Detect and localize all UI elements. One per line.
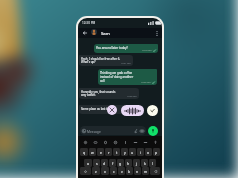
button[interactable]: z — [92, 167, 100, 175]
button[interactable]: More options — [152, 28, 161, 38]
button[interactable]: d — [101, 159, 108, 167]
button[interactable]: You around later today? — [94, 44, 158, 53]
button[interactable]: t — [113, 148, 120, 156]
button[interactable]: Clipboard — [102, 139, 108, 145]
staticText: b — [128, 169, 131, 174]
button[interactable]: b — [126, 167, 133, 175]
staticText: j — [136, 161, 137, 166]
staticText: 12:18 pm — [142, 49, 152, 52]
staticText: n — [136, 169, 139, 174]
staticText: Same place as last time? — [81, 107, 114, 111]
button[interactable]: Emoji — [122, 139, 128, 145]
staticText: u — [131, 150, 134, 155]
staticText: e — [100, 150, 102, 155]
button[interactable]: o — [145, 148, 152, 156]
button[interactable]: Settings — [82, 139, 88, 145]
button[interactable]: Yeah, I should be free after 6. — [79, 55, 133, 66]
staticText: v — [121, 169, 123, 174]
staticText: You around later today? — [96, 46, 128, 50]
button[interactable]: Thinking we grab coffee — [98, 69, 157, 85]
staticText: q — [83, 150, 86, 155]
staticText: Sam — [101, 30, 110, 36]
button[interactable]: j — [133, 159, 140, 167]
staticText: p — [155, 150, 158, 155]
staticText: Thinking we grab coffee — [100, 71, 133, 75]
button[interactable]: Backspace — [150, 167, 160, 175]
staticText: way better. — [81, 93, 96, 97]
staticText: m — [144, 169, 148, 174]
button[interactable]: Back — [80, 28, 89, 38]
staticText: w — [91, 150, 94, 155]
staticText: 12:26 pm — [127, 95, 137, 98]
staticText: a — [87, 161, 89, 166]
button[interactable]: Shift — [80, 167, 91, 175]
button[interactable]: q — [80, 148, 88, 156]
staticText: instead of doing another — [100, 75, 134, 79]
button[interactable]: c — [110, 167, 117, 175]
button[interactable]: h — [125, 159, 132, 167]
button[interactable]: Translate — [132, 139, 138, 145]
button[interactable]: Stickers — [112, 139, 118, 145]
button[interactable]: Send voice message — [147, 105, 158, 116]
button[interactable]: f — [109, 159, 116, 167]
button[interactable]: p — [153, 148, 160, 156]
button[interactable]: g — [117, 159, 124, 167]
button[interactable]: a — [84, 159, 92, 167]
staticText: call — [100, 79, 105, 83]
button[interactable]: e — [97, 148, 104, 156]
button[interactable]: GIF — [92, 139, 98, 145]
button[interactable]: Same place as last time? — [79, 105, 135, 114]
staticText: z — [95, 169, 97, 174]
button[interactable]: r — [105, 148, 112, 156]
staticText: d — [103, 161, 106, 166]
staticText: 12:30 PM — [82, 21, 96, 25]
staticText: What's up? — [81, 60, 96, 64]
staticText: h — [127, 161, 130, 166]
staticText: f — [112, 161, 114, 166]
button[interactable]: Record voice message — [148, 126, 158, 136]
staticText: r — [108, 150, 110, 155]
button[interactable]: Cancel recording — [107, 105, 117, 115]
staticText: Message — [87, 129, 101, 133]
button[interactable]: x — [101, 167, 109, 175]
staticText: k — [144, 161, 146, 166]
staticText: x — [104, 169, 106, 174]
staticText: y — [124, 150, 126, 155]
staticText: Honestly yes, that sounds — [81, 90, 116, 94]
button[interactable]: i — [137, 148, 144, 156]
staticText: i — [140, 150, 141, 155]
staticText: t — [116, 150, 118, 155]
button[interactable]: Voice recording waveform — [121, 105, 144, 116]
staticText: c — [113, 169, 115, 174]
button[interactable]: Honestly yes, that sounds — [79, 88, 139, 99]
button[interactable]: u — [129, 148, 136, 156]
staticText: Yeah, I should be free after 6. — [81, 57, 121, 61]
button[interactable]: k — [141, 159, 148, 167]
staticText: s — [96, 161, 98, 166]
staticText: l — [152, 161, 153, 166]
button[interactable]: Message — [80, 126, 146, 135]
button[interactable]: m — [142, 167, 149, 175]
staticText: 12:25 pm — [141, 81, 151, 84]
button[interactable]: y — [121, 148, 128, 156]
staticText: 12:21 pm — [121, 62, 131, 65]
button[interactable]: v — [118, 167, 125, 175]
button[interactable]: l — [149, 159, 156, 167]
staticText: g — [119, 161, 122, 166]
button[interactable]: Voice input — [152, 139, 158, 145]
staticText: 12:27 pm — [123, 110, 133, 113]
button[interactable]: More — [142, 139, 148, 145]
button[interactable]: Contact avatar — [91, 29, 97, 35]
staticText: o — [147, 150, 150, 155]
button[interactable]: s — [93, 159, 100, 167]
button[interactable]: w — [89, 148, 96, 156]
button[interactable]: n — [134, 167, 141, 175]
